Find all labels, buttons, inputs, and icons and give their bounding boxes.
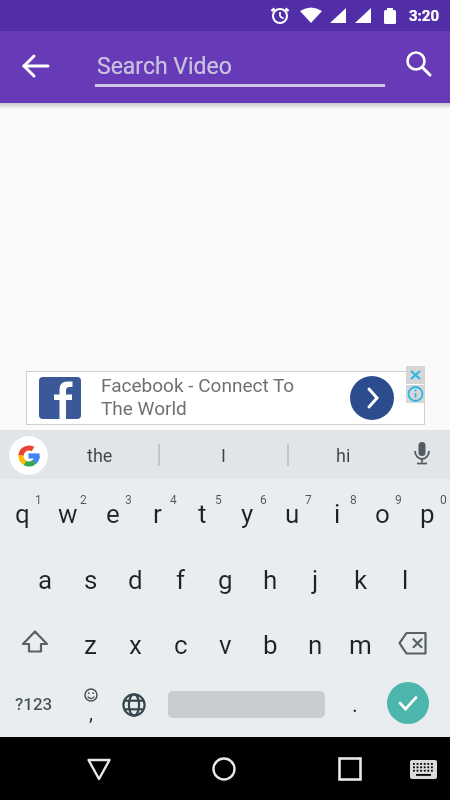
button[interactable]: m <box>338 616 383 674</box>
button[interactable]: I <box>188 440 258 470</box>
button[interactable]: x <box>113 616 158 674</box>
button[interactable]: j <box>293 551 338 609</box>
staticText: . <box>352 692 358 718</box>
staticText: 0 <box>440 493 447 507</box>
staticText: 7 <box>305 493 312 507</box>
staticText: the <box>87 445 113 466</box>
staticText: s <box>84 565 98 595</box>
button[interactable]: h <box>248 551 293 609</box>
staticText: n <box>308 630 323 660</box>
button[interactable]: ?123 <box>3 684 65 724</box>
staticText: w <box>58 499 78 529</box>
button[interactable]: i <box>315 485 360 543</box>
staticText: u <box>285 499 300 529</box>
staticText: c <box>174 630 188 660</box>
button[interactable]: p <box>405 485 450 543</box>
button[interactable]: f <box>158 551 203 609</box>
staticText: 3:20 <box>409 7 440 25</box>
staticText: 1 <box>35 493 42 507</box>
staticText: x <box>129 630 142 660</box>
button[interactable]: r <box>135 485 180 543</box>
staticText: r <box>153 499 162 529</box>
staticText: , <box>89 701 93 724</box>
staticText: 2 <box>80 493 87 507</box>
button[interactable]: z <box>68 616 113 674</box>
staticText: l <box>402 565 409 595</box>
staticText: 8 <box>350 493 357 507</box>
button[interactable]: Search Video <box>95 45 385 87</box>
button[interactable] <box>406 366 425 384</box>
staticText: Search Video <box>97 53 232 80</box>
button[interactable]: Facebook - Connect To <box>27 372 424 424</box>
button[interactable] <box>385 619 437 671</box>
staticText: o <box>375 499 390 529</box>
staticText: q <box>15 499 30 529</box>
button[interactable]: o <box>360 485 405 543</box>
button[interactable] <box>8 619 60 671</box>
staticText: The World <box>101 397 187 419</box>
button[interactable] <box>112 679 156 731</box>
button[interactable] <box>75 745 123 793</box>
button[interactable]: s <box>68 551 113 609</box>
staticText: I <box>221 445 226 466</box>
staticText: 6 <box>260 493 267 507</box>
button[interactable]: t <box>180 485 225 543</box>
staticText: m <box>349 630 372 660</box>
staticText: 9 <box>395 493 402 507</box>
button[interactable]: e <box>90 485 135 543</box>
button[interactable] <box>405 750 443 788</box>
staticText: v <box>219 630 232 660</box>
button[interactable]: a <box>23 551 68 609</box>
button[interactable] <box>402 435 442 475</box>
button[interactable]: q <box>0 485 45 543</box>
staticText: b <box>263 630 278 660</box>
staticText: e <box>106 499 120 529</box>
button[interactable] <box>406 385 425 403</box>
staticText: y <box>241 499 254 529</box>
staticText: a <box>38 565 53 595</box>
staticText: hi <box>336 445 351 466</box>
button[interactable]: hi <box>308 440 378 470</box>
button[interactable] <box>8 435 49 476</box>
staticText: g <box>218 565 233 595</box>
button[interactable]: c <box>158 616 203 674</box>
staticText: t <box>198 499 207 529</box>
staticText: p <box>420 499 435 529</box>
button[interactable]: n <box>293 616 338 674</box>
button[interactable]: b <box>248 616 293 674</box>
button[interactable] <box>12 42 60 90</box>
button[interactable] <box>387 682 429 724</box>
button[interactable]: w <box>45 485 90 543</box>
staticText: 5 <box>215 493 222 507</box>
button[interactable]: . <box>340 685 370 725</box>
staticText: 3 <box>125 493 132 507</box>
button[interactable] <box>350 376 394 420</box>
staticText: ?123 <box>15 694 53 714</box>
staticText: f <box>176 565 186 595</box>
staticText: k <box>354 565 368 595</box>
staticText: d <box>128 565 143 595</box>
button[interactable]: , <box>68 679 112 731</box>
button[interactable]: l <box>383 551 428 609</box>
button[interactable]: k <box>338 551 383 609</box>
button[interactable]: v <box>203 616 248 674</box>
staticText: 4 <box>170 493 177 507</box>
button[interactable]: g <box>203 551 248 609</box>
button[interactable]: u <box>270 485 315 543</box>
staticText: j <box>312 565 319 595</box>
staticText: Facebook - Connect To <box>101 374 295 396</box>
staticText: i <box>334 499 341 529</box>
button[interactable]: the <box>65 440 135 470</box>
button[interactable] <box>326 745 374 793</box>
button[interactable]: y <box>225 485 270 543</box>
button[interactable]: d <box>113 551 158 609</box>
staticText: h <box>263 565 278 595</box>
staticText: z <box>84 630 97 660</box>
button[interactable] <box>393 38 441 86</box>
button[interactable] <box>200 745 248 793</box>
